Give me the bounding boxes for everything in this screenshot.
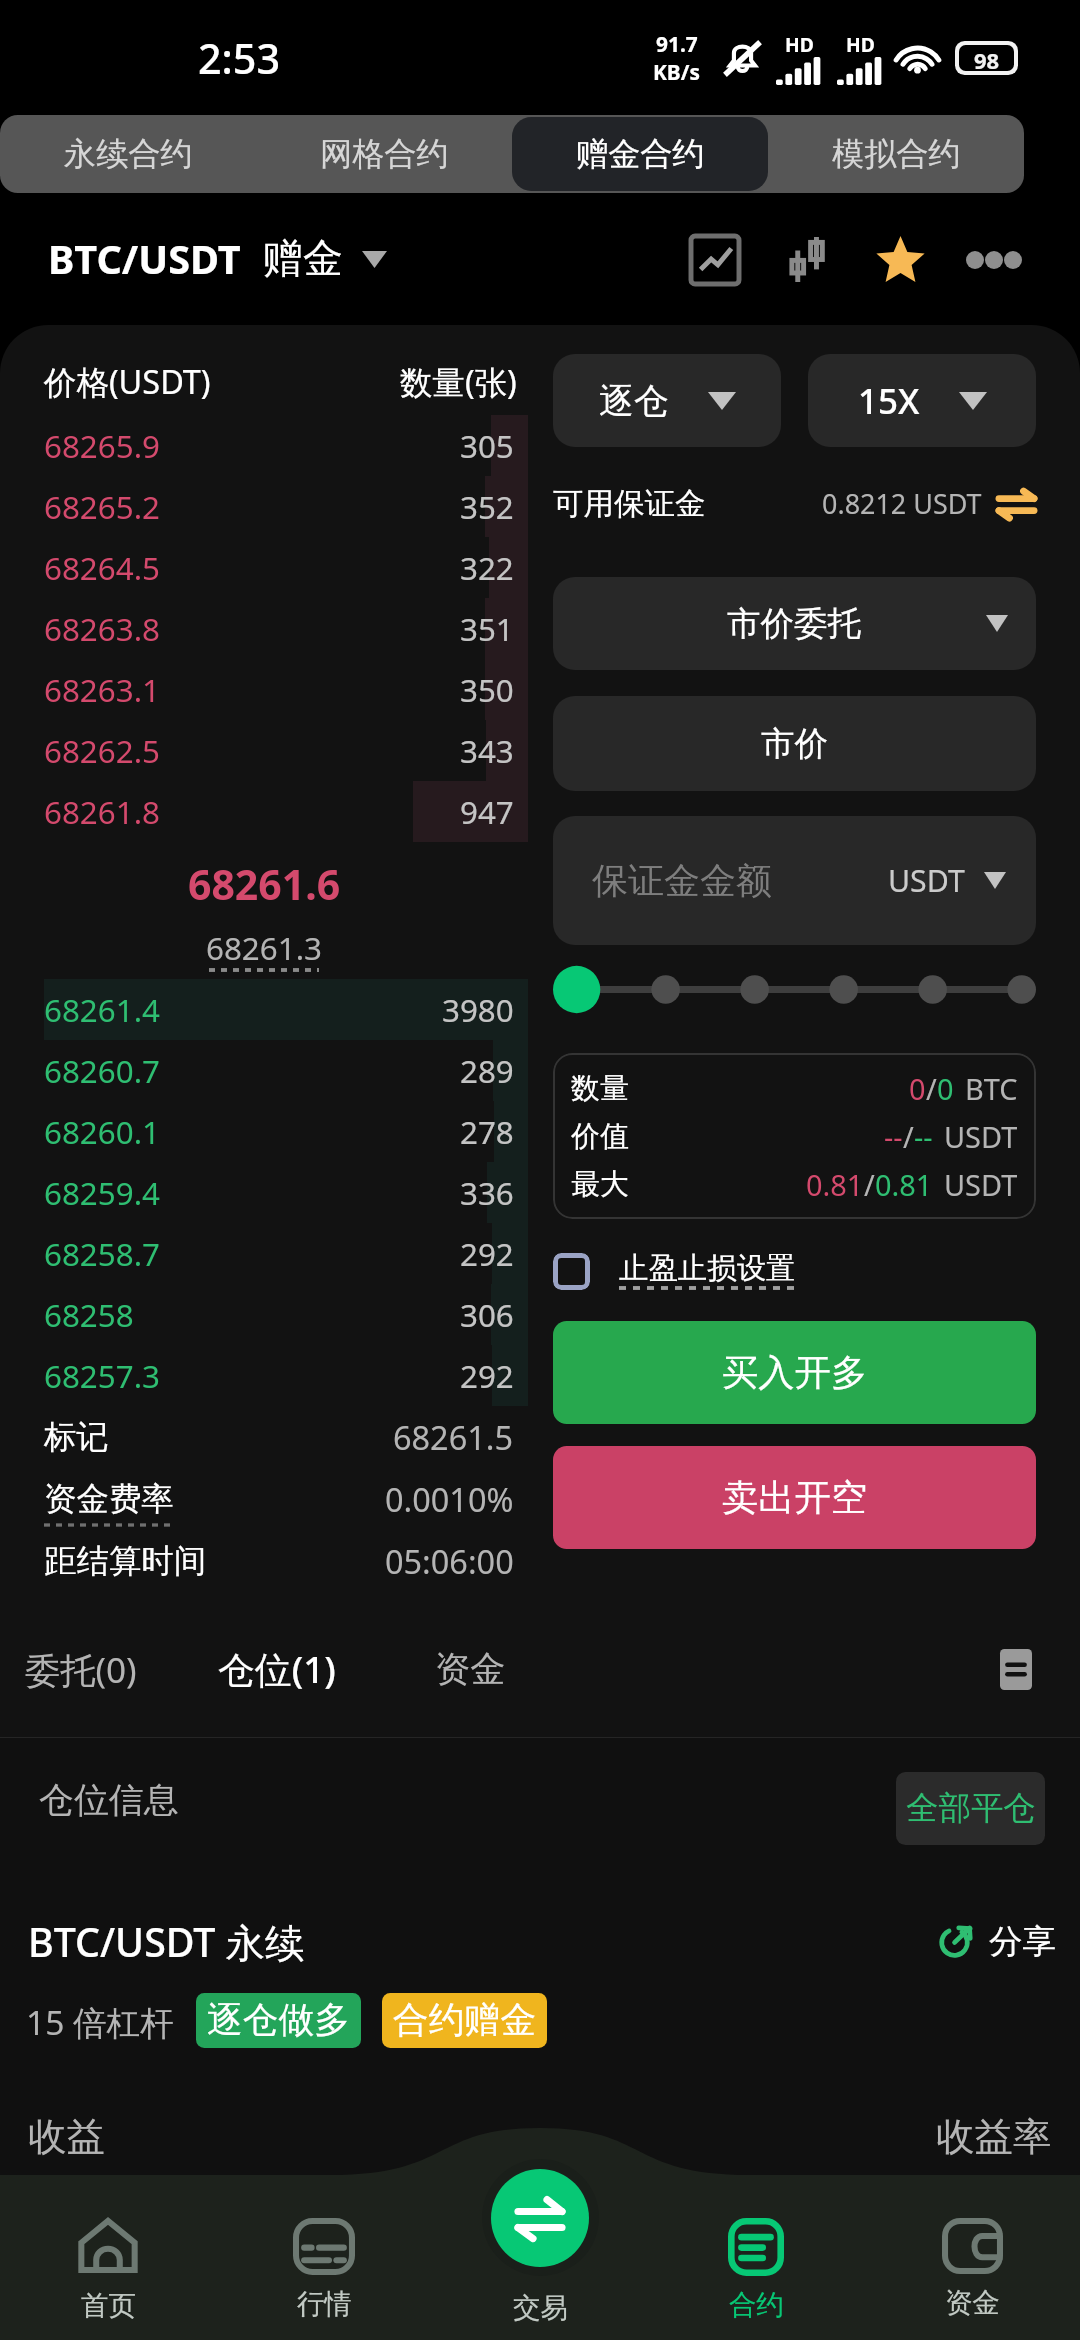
staticText: 289 bbox=[460, 1049, 514, 1092]
staticText: 292 bbox=[460, 1232, 514, 1275]
button[interactable]: 68260.7 bbox=[0, 1040, 528, 1101]
staticText: 网格合约 bbox=[320, 134, 449, 175]
staticText: 最大 bbox=[571, 1166, 629, 1202]
button[interactable]: Trade bbox=[491, 2169, 589, 2267]
staticText: 资金 bbox=[435, 1647, 506, 1691]
button[interactable]: More options bbox=[947, 213, 1040, 306]
staticText: 68260.1 bbox=[44, 1110, 160, 1153]
button[interactable]: 市价 bbox=[553, 696, 1036, 791]
button[interactable]: 资金 bbox=[413, 1625, 528, 1713]
button[interactable]: Line chart bbox=[668, 213, 761, 306]
button[interactable]: 资金 bbox=[864, 2218, 1080, 2340]
staticText: BTC/USDT 永续 bbox=[28, 1915, 305, 1969]
button[interactable]: Favourite bbox=[854, 213, 947, 306]
button[interactable]: 止盈止损设置 bbox=[553, 1238, 796, 1304]
button[interactable]: 委托(0) bbox=[3, 1623, 159, 1715]
staticText: 仓位(1) bbox=[218, 1644, 336, 1694]
staticText: 0.8212 USDT bbox=[822, 485, 982, 522]
staticText: 分享 bbox=[989, 1921, 1057, 1963]
staticText: 首页 bbox=[81, 2289, 136, 2324]
staticText: 模拟合约 bbox=[832, 134, 961, 175]
button[interactable]: 分享 bbox=[937, 1921, 1057, 1963]
staticText: 合约赠金 bbox=[393, 1998, 536, 2043]
staticText: 0.81 bbox=[875, 1165, 933, 1204]
button[interactable]: 永续合约 bbox=[0, 117, 256, 191]
staticText: KB/s bbox=[653, 58, 700, 86]
staticText: 赠金 bbox=[263, 234, 343, 284]
staticText: 68261.3 bbox=[206, 926, 322, 969]
button[interactable]: 合约 bbox=[648, 2218, 864, 2340]
staticText: BTC bbox=[965, 1069, 1018, 1108]
staticText: 行情 bbox=[297, 2287, 352, 2322]
button[interactable]: 68264.5 bbox=[0, 537, 528, 598]
button[interactable]: 仓位(1) bbox=[196, 1622, 358, 1716]
button[interactable]: 68262.5 bbox=[0, 720, 528, 781]
staticText: 市价委托 bbox=[727, 603, 862, 645]
staticText: 0 bbox=[937, 1069, 954, 1108]
staticText: 68262.5 bbox=[44, 729, 160, 772]
button[interactable]: Candlestick chart bbox=[761, 213, 854, 306]
button[interactable]: 网格合约 bbox=[256, 117, 512, 191]
button[interactable]: 68258.7 bbox=[0, 1223, 528, 1284]
staticText: 68261.6 bbox=[188, 856, 341, 912]
button[interactable]: 模拟合约 bbox=[768, 117, 1024, 191]
staticText: 仓位信息 bbox=[39, 1778, 179, 1822]
button[interactable]: 保证金金额 bbox=[553, 816, 1036, 945]
staticText: 收益 bbox=[28, 2113, 105, 2162]
staticText: 352 bbox=[460, 485, 514, 528]
button[interactable]: 首页 bbox=[0, 2218, 216, 2340]
staticText: 数量(张) bbox=[400, 359, 517, 403]
staticText: / bbox=[864, 1165, 875, 1204]
button[interactable]: Filter bbox=[974, 1628, 1057, 1711]
button[interactable]: 赠金合约 bbox=[512, 117, 768, 191]
staticText: 距结算时间 bbox=[44, 1541, 207, 1582]
button[interactable]: 全部平仓 bbox=[896, 1772, 1045, 1845]
staticText: 91.7 bbox=[656, 30, 698, 58]
staticText: USDT bbox=[944, 1165, 1018, 1204]
button[interactable]: 市价委托 bbox=[553, 577, 1036, 670]
button[interactable]: 68261.8 bbox=[0, 781, 528, 842]
button[interactable]: BTC/USDT bbox=[48, 232, 387, 286]
staticText: 0 bbox=[909, 1069, 926, 1108]
staticText: 947 bbox=[460, 790, 514, 833]
button[interactable]: 逐仓 bbox=[553, 354, 781, 447]
staticText: 买入开多 bbox=[722, 1350, 868, 1396]
button[interactable]: 68260.1 bbox=[0, 1101, 528, 1162]
staticText: 350 bbox=[460, 668, 514, 711]
staticText: 3980 bbox=[442, 988, 514, 1031]
staticText: 98 bbox=[974, 45, 1000, 71]
staticText: 15X bbox=[858, 377, 920, 425]
staticText: 305 bbox=[460, 424, 514, 467]
staticText: 68264.5 bbox=[44, 546, 160, 589]
button[interactable]: 68265.9 bbox=[0, 415, 528, 476]
staticText: 68265.9 bbox=[44, 424, 160, 467]
staticText: 价格(USDT) bbox=[44, 359, 211, 403]
button[interactable]: 68265.2 bbox=[0, 476, 528, 537]
staticText: HD bbox=[785, 31, 814, 57]
button[interactable]: 行情 bbox=[216, 2218, 432, 2340]
button[interactable]: 68263.8 bbox=[0, 598, 528, 659]
button[interactable]: 仓位信息 bbox=[39, 1778, 179, 1822]
staticText: 合约 bbox=[729, 2288, 784, 2323]
staticText: 68260.7 bbox=[44, 1049, 160, 1092]
button[interactable]: 68258 bbox=[0, 1284, 528, 1345]
button[interactable]: 卖出开空 bbox=[553, 1446, 1036, 1549]
staticText: 资金费率 bbox=[44, 1479, 174, 1520]
staticText: 市价 bbox=[761, 723, 829, 765]
staticText: 全部平仓 bbox=[906, 1788, 1036, 1829]
staticText: 292 bbox=[460, 1354, 514, 1397]
button[interactable]: 68257.3 bbox=[0, 1345, 528, 1406]
staticText: 赠金合约 bbox=[576, 134, 705, 175]
button[interactable]: 买入开多 bbox=[553, 1321, 1036, 1424]
staticText: 68259.4 bbox=[44, 1171, 160, 1214]
staticText: 68263.8 bbox=[44, 607, 160, 650]
button[interactable]: 68261.4 bbox=[0, 979, 528, 1040]
staticText: 68261.4 bbox=[44, 988, 160, 1031]
staticText: 数量 bbox=[571, 1070, 629, 1106]
button[interactable]: 68259.4 bbox=[0, 1162, 528, 1223]
button[interactable]: 68263.1 bbox=[0, 659, 528, 720]
button[interactable]: BTC/USDT 永续 bbox=[28, 1915, 305, 1969]
button[interactable]: 15X bbox=[808, 354, 1036, 447]
staticText: 卖出开空 bbox=[722, 1475, 868, 1521]
staticText: 标记 bbox=[44, 1417, 109, 1458]
